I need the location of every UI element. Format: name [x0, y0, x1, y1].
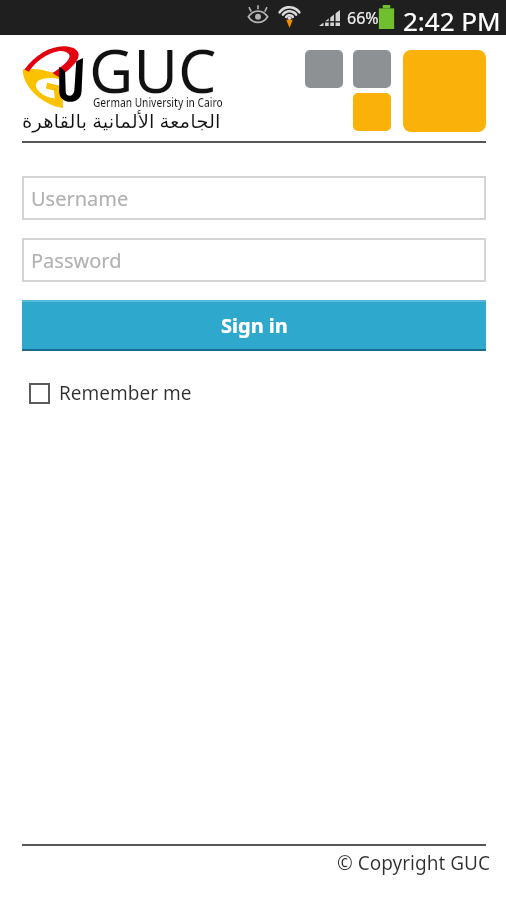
- staticText: Remember me: [59, 380, 192, 406]
- button[interactable]: Username: [22, 176, 486, 220]
- staticText: Sign in: [221, 312, 288, 339]
- staticText: GUC: [89, 28, 217, 111]
- staticText: 2:42 PM: [403, 3, 501, 38]
- other: Mobile signal: [319, 10, 340, 26]
- staticText: © Copyright GUC: [337, 850, 490, 876]
- other: Battery 66 percent: [378, 5, 395, 29]
- staticText: Password: [31, 247, 122, 274]
- other: Smart stay: [248, 9, 268, 24]
- staticText: 66%: [347, 7, 379, 29]
- button[interactable]: Remember me: [22, 378, 202, 408]
- button[interactable]: Password: [22, 238, 486, 282]
- staticText: Username: [31, 185, 129, 212]
- staticText: الجامعة الألمانية بالقاهرة: [22, 108, 221, 134]
- button[interactable]: Sign in: [22, 300, 486, 351]
- other: Wi-Fi: [277, 6, 302, 28]
- staticText: German University in Cairo: [93, 93, 223, 110]
